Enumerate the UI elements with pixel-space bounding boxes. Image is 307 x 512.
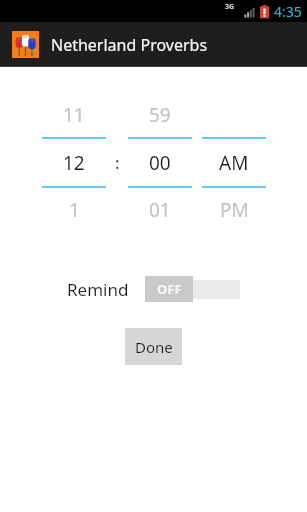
button[interactable]: Done bbox=[125, 328, 182, 365]
button[interactable]: Remind toggle, off bbox=[145, 276, 240, 302]
button[interactable]: Minute bbox=[126, 93, 194, 232]
staticText: 12 bbox=[63, 150, 85, 176]
staticText: AM bbox=[219, 150, 249, 176]
staticText: PM bbox=[220, 197, 249, 223]
staticText: OFF bbox=[157, 280, 182, 298]
staticText: 11 bbox=[63, 102, 85, 128]
staticText: Done bbox=[135, 337, 173, 357]
staticText: 00 bbox=[149, 150, 171, 176]
staticText: Remind bbox=[67, 278, 129, 301]
button[interactable]: Hour bbox=[40, 93, 108, 232]
staticText: Netherland Proverbs bbox=[51, 34, 208, 56]
button[interactable]: AM or PM bbox=[200, 93, 268, 232]
staticText: : bbox=[115, 151, 120, 174]
staticText: 4:35 bbox=[274, 2, 302, 21]
staticText: 3G bbox=[225, 2, 235, 12]
staticText: 1 bbox=[69, 197, 80, 223]
staticText: 59 bbox=[149, 102, 171, 128]
other: App icon bbox=[12, 31, 39, 58]
staticText: 01 bbox=[149, 197, 171, 223]
